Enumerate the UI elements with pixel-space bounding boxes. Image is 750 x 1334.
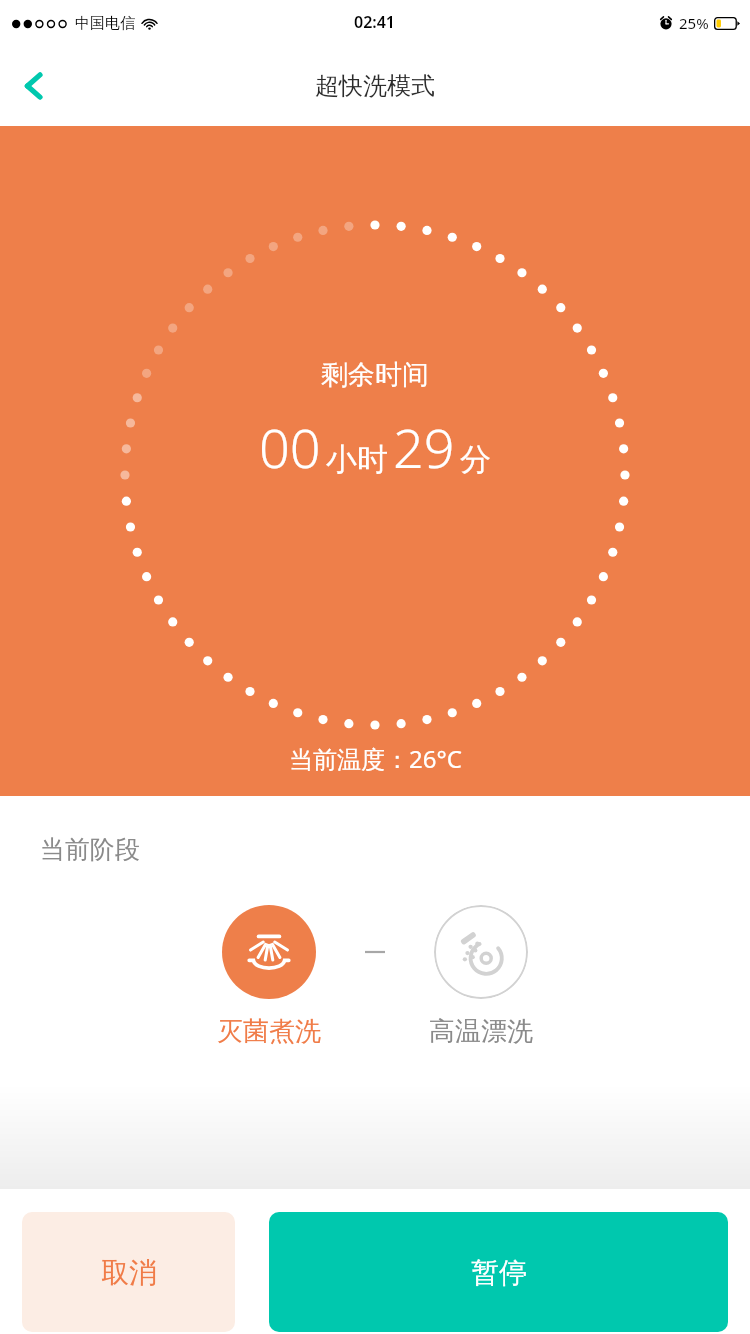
staticText: 取消 bbox=[101, 1255, 157, 1290]
staticText: 暂停 bbox=[471, 1255, 527, 1290]
button[interactable]: Back bbox=[6, 58, 62, 114]
staticText: 分 bbox=[460, 440, 491, 479]
button[interactable]: 灭菌煮洗 bbox=[189, 905, 349, 1048]
staticText: 超快洗模式 bbox=[315, 71, 435, 101]
staticText: 当前阶段 bbox=[40, 834, 140, 865]
staticText: 00 bbox=[259, 410, 321, 484]
staticText: 中国电信 bbox=[75, 14, 135, 33]
button[interactable]: 高温漂洗 bbox=[401, 905, 561, 1048]
staticText: 灭菌煮洗 bbox=[217, 1015, 321, 1048]
staticText: 小时 bbox=[326, 440, 388, 479]
staticText: 29 bbox=[393, 410, 455, 484]
button[interactable]: 暂停 bbox=[269, 1212, 728, 1332]
button[interactable]: 取消 bbox=[22, 1212, 235, 1332]
staticText: 剩余时间 bbox=[321, 358, 429, 392]
staticText: 25% bbox=[679, 13, 709, 33]
staticText: 02:41 bbox=[354, 11, 396, 33]
staticText: 高温漂洗 bbox=[429, 1015, 533, 1048]
staticText: 当前温度：26°C bbox=[289, 742, 462, 775]
